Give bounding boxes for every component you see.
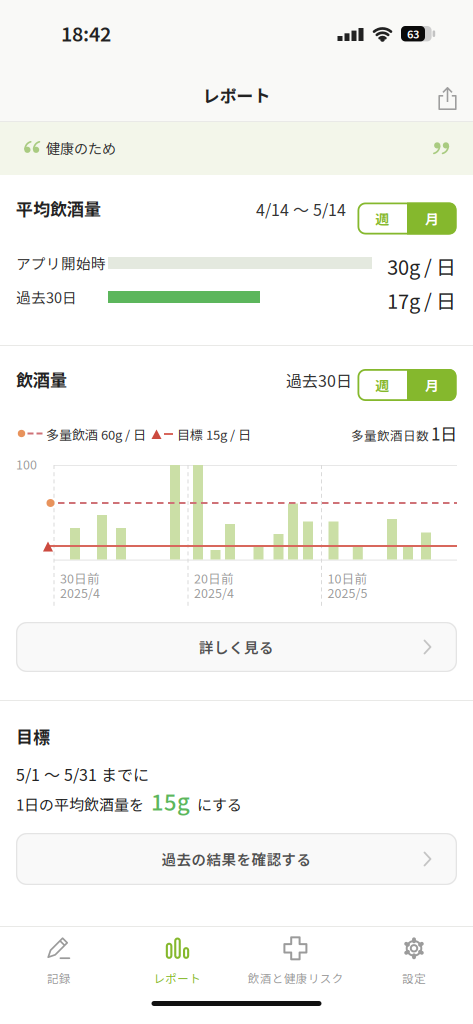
- staticText: 30日前: [60, 569, 100, 587]
- staticText: 詳しく見る: [199, 636, 274, 657]
- staticText: 過去30日: [16, 286, 77, 307]
- staticText: 月: [425, 208, 439, 229]
- staticText: 平均飲酒量: [16, 196, 101, 220]
- staticText: 63: [407, 26, 419, 42]
- staticText: 過去30日: [286, 368, 352, 392]
- staticText: 20日前: [194, 569, 234, 587]
- staticText: 目標 15g / 日: [177, 425, 251, 443]
- staticText: 設定: [402, 970, 426, 986]
- staticText: 4/14 〜 5/14: [256, 197, 346, 221]
- staticText: 17g / 日: [387, 285, 456, 314]
- staticText: 月: [425, 375, 439, 395]
- staticText: 1日の平均飲酒量を: [16, 793, 144, 815]
- staticText: 週: [375, 375, 389, 395]
- staticText: 2025/4: [60, 583, 100, 602]
- staticText: 2025/5: [327, 583, 367, 602]
- staticText: 飲酒量: [16, 367, 67, 391]
- staticText: 週: [375, 208, 389, 229]
- staticText: 記録: [47, 970, 71, 986]
- staticText: 多量飲酒 60g / 日: [46, 425, 146, 443]
- staticText: レポート: [202, 83, 270, 107]
- staticText: 15g: [151, 785, 190, 817]
- staticText: アプリ開始時: [16, 252, 106, 273]
- staticText: 飲酒と健康リスク: [248, 970, 344, 986]
- staticText: 目標: [16, 724, 50, 748]
- staticText: 過去の結果を確認する: [161, 848, 311, 869]
- staticText: 18:42: [61, 19, 111, 47]
- staticText: 1日: [431, 421, 457, 445]
- staticText: 健康のため: [46, 138, 116, 158]
- staticText: 5/1 〜 5/31 までに: [16, 762, 149, 786]
- staticText: レポート: [153, 970, 201, 986]
- staticText: にする: [197, 793, 242, 815]
- staticText: 2025/4: [194, 583, 234, 602]
- staticText: 10日前: [327, 569, 367, 587]
- staticText: 多量飲酒日数: [351, 426, 429, 444]
- staticText: 30g / 日: [387, 251, 456, 280]
- staticText: 100: [16, 455, 37, 473]
